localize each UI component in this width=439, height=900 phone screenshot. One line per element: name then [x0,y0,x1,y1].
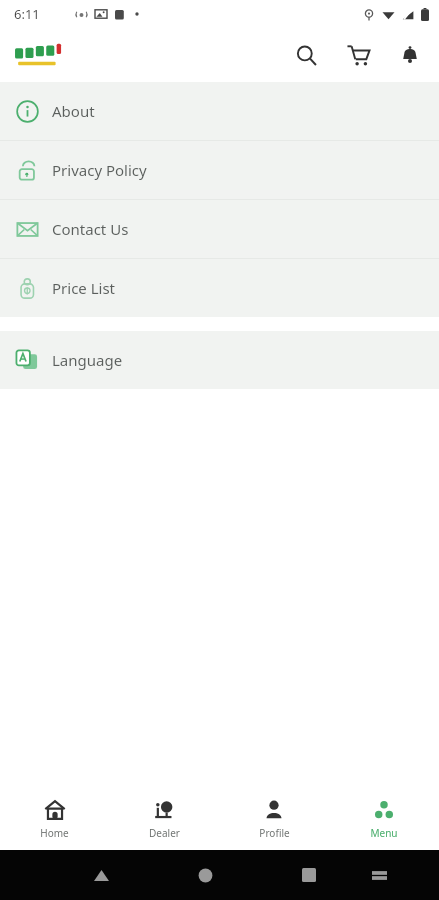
button[interactable]: About [0,82,439,140]
staticText: About [52,101,95,121]
button[interactable]: Price List [0,259,439,317]
staticText: Contact Us [52,219,129,239]
button[interactable]: Search [291,40,321,70]
button[interactable]: App logo [14,38,66,72]
staticText: Language [52,350,123,370]
button[interactable]: Language [0,331,439,389]
staticText: Profile [259,826,290,840]
button[interactable]: Privacy Policy [0,141,439,199]
button[interactable]: Keyboard [350,870,408,881]
button[interactable]: Menu [329,788,439,850]
staticText: 6:11 [14,5,40,23]
button[interactable]: Home [0,788,109,850]
button[interactable]: Contact Us [0,200,439,258]
button[interactable]: Home [176,868,234,883]
button[interactable]: Profile [219,788,329,850]
button[interactable]: Cart [343,40,373,70]
staticText: Menu [370,826,398,840]
staticText: Privacy Policy [52,160,147,180]
staticText: Dealer [149,826,180,840]
button[interactable]: Back [72,867,130,884]
staticText: Price List [52,278,116,298]
button[interactable]: Recents [280,868,338,882]
staticText: Home [40,826,69,840]
button[interactable]: Notifications [395,40,425,70]
button[interactable]: Dealer [109,788,219,850]
